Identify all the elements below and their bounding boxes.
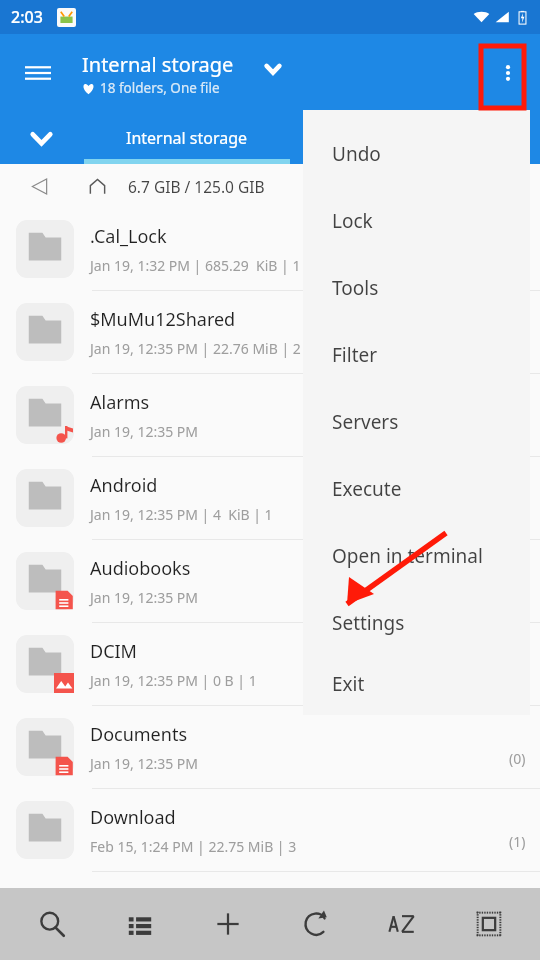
button[interactable]: Audiobooks (0, 540, 540, 623)
button[interactable]: Home (80, 169, 114, 203)
staticText: Servers (332, 409, 399, 435)
staticText: Audiobooks (90, 556, 191, 581)
button[interactable]: Refresh (271, 888, 358, 960)
staticText: .Cal_Lock (90, 224, 167, 249)
button[interactable]: Tools (303, 254, 530, 321)
staticText: 6.7 GIB / 125.0 GIB (128, 176, 265, 197)
button[interactable]: Open navigation drawer (14, 49, 62, 97)
staticText: Android (90, 473, 158, 498)
button[interactable]: Android (0, 457, 540, 540)
staticText: Documents (90, 722, 188, 747)
staticText: Internal storage (82, 51, 234, 78)
button[interactable]: Expand tabs (18, 115, 64, 161)
button[interactable]: Execute (303, 455, 530, 522)
staticText: Settings (332, 610, 405, 636)
staticText: Filter (332, 342, 378, 368)
button[interactable]: List view (96, 888, 184, 960)
staticText: Feb 15, 1:24 PM | 22.75 MiB | 3 (90, 837, 297, 856)
staticText: Exit (332, 671, 365, 697)
button[interactable]: Undo (303, 120, 530, 187)
button[interactable]: Settings (303, 589, 530, 656)
button[interactable]: Download (0, 789, 540, 872)
button[interactable]: $MuMu12Shared (0, 291, 540, 374)
staticText: Jan 19, 12:35 PM | 0 B | 1 (90, 671, 257, 690)
button[interactable]: .Cal_Lock (0, 208, 540, 291)
staticText: Open in terminal (332, 543, 483, 569)
staticText: Jan 19, 12:35 PM (90, 754, 198, 773)
button[interactable]: DCIM (0, 623, 540, 706)
staticText: Download (90, 805, 176, 830)
button[interactable]: Alarms (0, 374, 540, 457)
button[interactable]: Sort A to Z (358, 888, 445, 960)
button[interactable]: Add (184, 888, 271, 960)
staticText: Jan 19, 12:35 PM | 22.76 MiB | 2 (90, 339, 301, 358)
button[interactable]: Internal storage (84, 112, 290, 164)
button[interactable]: Search (8, 888, 96, 960)
staticText: Jan 19, 12:35 PM (90, 422, 198, 441)
staticText: Jan 19, 12:35 PM (90, 588, 198, 607)
button[interactable]: Back (22, 169, 56, 203)
staticText: (0) (509, 749, 526, 768)
staticText: Alarms (90, 390, 150, 415)
staticText: Lock (332, 208, 373, 234)
staticText: Undo (332, 141, 381, 167)
staticText: Internal storage (126, 127, 248, 149)
staticText: Jan 19, 12:35 PM | 4 KiB | 1 (90, 505, 273, 524)
staticText: (1) (509, 832, 526, 851)
button[interactable]: Change storage (258, 54, 288, 84)
staticText: 2:03 (11, 6, 43, 28)
staticText: 18 folders, One file (100, 79, 220, 97)
staticText: Tools (332, 275, 379, 301)
staticText: Execute (332, 476, 402, 502)
staticText: Jan 19, 1:32 PM | 685.29 KiB | 1 (90, 256, 301, 275)
button[interactable]: Servers (303, 388, 530, 455)
button[interactable]: Open in terminal (303, 522, 530, 589)
button[interactable]: More options (484, 49, 532, 97)
button[interactable]: Documents (0, 706, 540, 789)
button[interactable]: Exit (303, 656, 530, 711)
button[interactable]: Lock (303, 187, 530, 254)
staticText: DCIM (90, 639, 137, 664)
button[interactable]: Select (445, 888, 532, 960)
button[interactable]: Filter (303, 321, 530, 388)
staticText: $MuMu12Shared (90, 307, 236, 332)
